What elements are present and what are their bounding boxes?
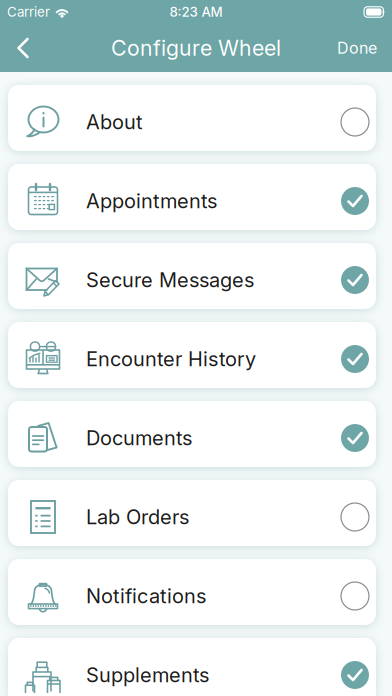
button[interactable]: Supplements	[8, 638, 376, 696]
button[interactable]: Notifications	[8, 559, 376, 625]
button[interactable]: Done	[337, 24, 392, 72]
button[interactable]: About	[8, 85, 376, 151]
button[interactable]: Encounter History	[8, 322, 376, 388]
staticText: Supplements	[86, 663, 209, 687]
staticText: Secure Messages	[86, 268, 254, 292]
staticText: Encounter History	[86, 347, 256, 371]
button[interactable]: Lab Orders	[8, 480, 376, 546]
button[interactable]: Appointments	[8, 164, 376, 230]
button[interactable]: Documents	[8, 401, 376, 467]
staticText: Appointments	[86, 189, 217, 213]
button[interactable]: Secure Messages	[8, 243, 376, 309]
staticText: Done	[337, 39, 377, 57]
staticText: 8:23 AM	[169, 4, 222, 20]
staticText: Notifications	[86, 584, 206, 608]
staticText: Carrier	[7, 4, 50, 20]
button[interactable]: Back	[0, 24, 46, 72]
staticText: About	[86, 110, 143, 134]
staticText: Lab Orders	[86, 505, 189, 529]
staticText: Documents	[86, 426, 192, 450]
staticText: Configure Wheel	[111, 35, 281, 61]
